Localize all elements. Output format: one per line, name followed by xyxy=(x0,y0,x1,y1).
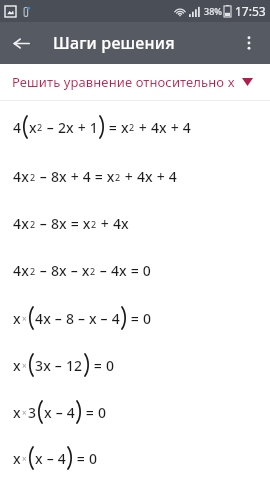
staticText: 2 xyxy=(30,171,36,183)
button[interactable]: x xyxy=(0,294,270,341)
staticText: = x xyxy=(105,118,129,137)
staticText: – 4x = 0 xyxy=(96,261,151,280)
staticText: × xyxy=(22,453,27,464)
staticText: 17:53 xyxy=(235,3,266,19)
button[interactable]: 4 xyxy=(0,101,270,153)
staticText: 3x – 12 xyxy=(35,356,83,375)
staticText: 2 xyxy=(30,265,36,277)
staticText: 2 xyxy=(91,218,97,230)
staticText: x xyxy=(13,449,21,468)
staticText: x xyxy=(29,118,37,137)
staticText: – 2x + 1 xyxy=(43,118,98,137)
staticText: – 8x + 4 = x xyxy=(36,167,115,186)
staticText: 3 xyxy=(28,403,37,422)
button[interactable]: Ещё xyxy=(228,22,270,64)
staticText: × xyxy=(22,407,27,418)
staticText: = 0 xyxy=(90,356,115,375)
staticText: × xyxy=(22,360,27,371)
staticText: – 8x = x xyxy=(36,214,91,233)
staticText: = 0 xyxy=(73,449,98,468)
staticText: Решить уравнение относительно x xyxy=(12,73,235,91)
staticText: = 0 xyxy=(127,309,152,328)
button[interactable]: Решить уравнение относительно x xyxy=(0,64,270,100)
staticText: x xyxy=(13,356,21,375)
staticText: x xyxy=(13,309,21,328)
staticText: + 4x + 4 xyxy=(135,118,191,137)
button[interactable]: x xyxy=(0,341,270,388)
staticText: x – 4 xyxy=(35,449,66,468)
staticText: 4x – 8 – x – 4 xyxy=(35,309,120,328)
staticText: Шаги решения xyxy=(53,32,175,54)
staticText: 2 xyxy=(129,121,135,133)
staticText: 38% xyxy=(204,5,222,17)
button[interactable]: 4x xyxy=(0,153,270,200)
button[interactable]: x xyxy=(0,388,270,435)
staticText: = 0 xyxy=(82,403,107,422)
staticText: 4x xyxy=(13,167,30,186)
staticText: 2 xyxy=(115,171,121,183)
staticText: + 4x + 4 xyxy=(121,167,177,186)
staticText: x xyxy=(13,403,21,422)
staticText: + 4x xyxy=(97,214,129,233)
staticText: 2 xyxy=(90,265,96,277)
button[interactable]: Назад xyxy=(0,22,42,64)
staticText: 4 xyxy=(13,118,22,137)
staticText: 2 xyxy=(37,121,43,133)
staticText: – 8x – x xyxy=(36,261,90,280)
button[interactable]: x xyxy=(0,435,270,480)
staticText: 2 xyxy=(30,218,36,230)
staticText: 4x xyxy=(13,214,30,233)
button[interactable]: 4x xyxy=(0,200,270,247)
staticText: x – 4 xyxy=(44,403,75,422)
staticText: 4x xyxy=(13,261,30,280)
staticText: × xyxy=(22,313,27,324)
button[interactable]: 4x xyxy=(0,247,270,294)
